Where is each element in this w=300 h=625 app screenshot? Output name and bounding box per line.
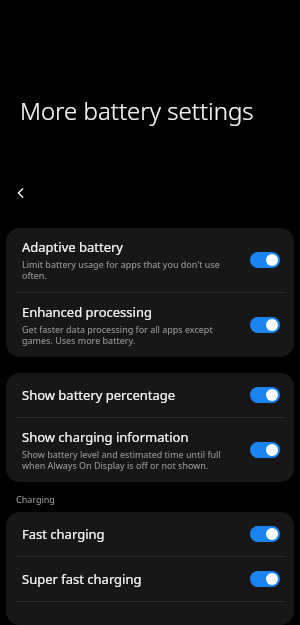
button[interactable]: Toggle setting (250, 252, 280, 268)
staticText: Get faster data processing for all apps … (22, 323, 242, 347)
button[interactable]: Back (9, 181, 33, 205)
button[interactable]: Toggle setting (250, 442, 280, 458)
button[interactable]: Fast charging (6, 512, 294, 556)
button[interactable]: Toggle setting (250, 317, 280, 333)
button[interactable]: Show battery percentage (6, 373, 294, 417)
staticText: Show charging information (22, 428, 189, 446)
button[interactable]: Super fast charging (6, 557, 294, 601)
staticText: Show battery level and estimated time un… (22, 448, 242, 472)
staticText: Super fast charging (22, 570, 142, 588)
button[interactable]: Toggle setting (250, 387, 280, 403)
button[interactable]: Show charging information (6, 418, 294, 482)
button[interactable]: Enhanced processing (6, 293, 294, 357)
button[interactable]: Toggle setting (250, 571, 280, 587)
staticText: Enhanced processing (22, 303, 152, 321)
staticText: Show battery percentage (22, 386, 176, 404)
button[interactable]: Toggle setting (250, 526, 280, 542)
staticText: Charging (16, 493, 55, 505)
staticText: Limit battery usage for apps that you do… (22, 258, 242, 282)
staticText: More battery settings (20, 94, 254, 127)
button[interactable]: Adaptive battery (6, 228, 294, 292)
staticText: Adaptive battery (22, 238, 123, 256)
staticText: Fast charging (22, 525, 105, 543)
